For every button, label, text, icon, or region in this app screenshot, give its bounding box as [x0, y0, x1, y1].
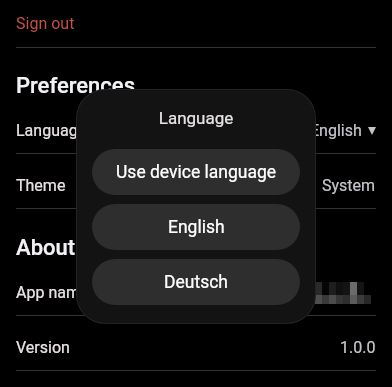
staticText: About — [16, 235, 76, 261]
other: Choose language — [368, 127, 376, 135]
staticText: Version — [16, 338, 70, 357]
staticText: Language — [77, 108, 315, 128]
staticText: App name — [16, 283, 89, 302]
staticText: English — [168, 217, 225, 238]
staticText: Preferences — [16, 73, 136, 99]
staticText: Use device language — [116, 162, 277, 183]
button[interactable]: Use device language — [92, 149, 300, 195]
staticText: Theme — [16, 176, 66, 195]
button[interactable]: Deutsch — [92, 259, 300, 305]
button[interactable]: Theme — [0, 163, 392, 208]
staticText: 1.0.0 — [340, 338, 376, 357]
button[interactable]: English — [92, 204, 300, 250]
staticText: System — [322, 176, 376, 195]
button[interactable]: App name — [0, 270, 392, 315]
staticText: Sign out — [16, 14, 75, 33]
staticText: English — [310, 121, 362, 140]
button[interactable]: Language — [0, 108, 392, 153]
staticText: Deutsch — [164, 272, 228, 293]
button[interactable]: Sign out — [0, 0, 392, 47]
button[interactable]: Version — [0, 325, 392, 370]
staticText: Language — [16, 121, 87, 140]
